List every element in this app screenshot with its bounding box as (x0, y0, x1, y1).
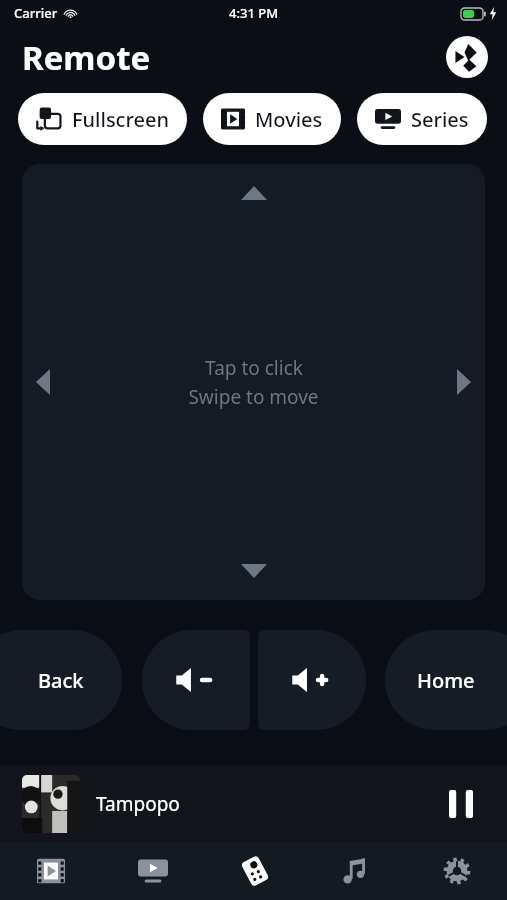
button[interactable]: Back (0, 630, 122, 730)
button[interactable]: Movies (203, 93, 341, 145)
button[interactable]: Volume down (142, 630, 250, 730)
button[interactable]: TV shows (102, 842, 204, 900)
staticText: 4:31 PM (229, 4, 279, 22)
button[interactable]: Fullscreen (18, 93, 187, 145)
staticText: Swipe to move (188, 384, 319, 410)
button[interactable]: Series (357, 93, 487, 145)
button[interactable]: Volume up (258, 630, 366, 730)
staticText: Carrier (14, 4, 58, 22)
button[interactable]: Home (385, 630, 507, 730)
button[interactable]: Music (305, 842, 406, 900)
staticText: Movies (255, 106, 323, 133)
staticText: Remote (22, 35, 151, 80)
button[interactable]: Movies (0, 842, 102, 900)
button[interactable]: Settings (406, 842, 507, 900)
staticText: Series (411, 106, 469, 133)
staticText: Fullscreen (72, 106, 169, 133)
button[interactable]: Remote (204, 842, 305, 900)
staticText: Tap to click (205, 355, 303, 381)
staticText: Tampopo (96, 791, 180, 817)
button[interactable]: Touchpad (22, 164, 485, 600)
button[interactable]: Kodi host (445, 35, 489, 79)
staticText: Home (417, 667, 475, 694)
button[interactable]: Pause (437, 780, 485, 828)
button[interactable]: Tampopo (0, 766, 507, 842)
staticText: Back (38, 667, 84, 694)
